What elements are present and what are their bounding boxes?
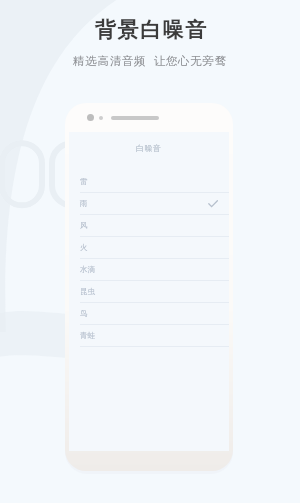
staticText: 青蛙 bbox=[80, 331, 95, 340]
staticText: 雨 bbox=[80, 199, 88, 208]
staticText: 昆虫 bbox=[80, 287, 95, 296]
staticText: 雷 bbox=[80, 177, 88, 186]
button[interactable]: 雨 bbox=[69, 193, 229, 215]
button[interactable]: 风 bbox=[69, 215, 229, 237]
button[interactable]: 水滴 bbox=[69, 259, 229, 281]
other: Selected bbox=[208, 199, 218, 209]
staticText: 鸟 bbox=[80, 309, 88, 318]
button[interactable]: 青蛙 bbox=[69, 325, 229, 347]
staticText: 水滴 bbox=[80, 265, 95, 274]
button[interactable]: 昆虫 bbox=[69, 281, 229, 303]
staticText: 白噪音 bbox=[136, 143, 162, 153]
staticText: 背景白噪音 bbox=[94, 17, 207, 43]
button[interactable]: 雷 bbox=[69, 171, 229, 193]
button[interactable]: 火 bbox=[69, 237, 229, 259]
staticText: 精选高清音频 让您心无旁骛 bbox=[73, 53, 227, 69]
staticText: 风 bbox=[80, 221, 88, 230]
button[interactable]: 鸟 bbox=[69, 303, 229, 325]
staticText: 火 bbox=[80, 243, 88, 252]
